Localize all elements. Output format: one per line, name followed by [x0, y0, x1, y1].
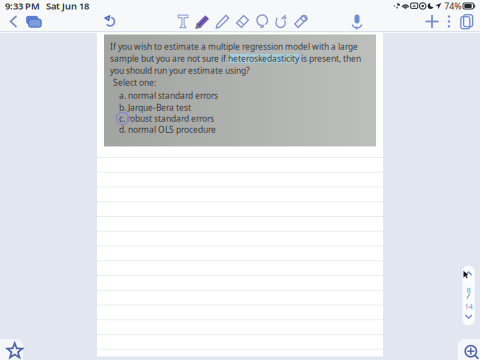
- button[interactable]: Marker: [193, 12, 212, 31]
- button[interactable]: Zoom: [458, 339, 480, 360]
- staticText: c. robust standard errors: [119, 113, 214, 124]
- staticText: sample but you are not sure if: [110, 53, 228, 64]
- button[interactable]: Undo: [100, 12, 120, 31]
- staticText: heteroskedasticity: [228, 53, 299, 64]
- button[interactable]: Add: [423, 12, 441, 31]
- staticText: 14: [465, 301, 473, 311]
- button[interactable]: Favorite: [0, 339, 23, 360]
- button[interactable]: Record audio: [348, 12, 366, 31]
- staticText: b. Jarque-Bera test: [119, 102, 191, 113]
- staticText: 8: [467, 284, 471, 295]
- button[interactable]: Lasso: [253, 12, 272, 31]
- button[interactable]: Hand: [272, 12, 291, 31]
- staticText: d. normal OLS procedure: [119, 124, 216, 135]
- staticText: 74%: [444, 0, 461, 12]
- button[interactable]: Page 8 of 14: [462, 265, 475, 325]
- staticText: If you wish to estimate a multiple regre…: [110, 41, 358, 52]
- button[interactable]: Pen: [213, 12, 232, 31]
- button[interactable]: Pages: [457, 12, 475, 31]
- button[interactable]: More: [443, 12, 455, 31]
- staticText: Select one:: [113, 77, 156, 88]
- staticText: you should run your estimate using?: [110, 65, 250, 76]
- button[interactable]: Back: [5, 12, 21, 31]
- button[interactable]: Shape tool: [291, 12, 310, 31]
- staticText: Sat Jun 18: [46, 0, 89, 12]
- staticText: 9:33 PM: [5, 0, 40, 12]
- staticText: a. normal standard errors: [119, 90, 218, 101]
- staticText: is present, then: [299, 53, 361, 64]
- button[interactable]: Notebooks: [23, 12, 43, 31]
- button[interactable]: Eraser: [233, 12, 252, 31]
- button[interactable]: Text tool: [173, 12, 192, 31]
